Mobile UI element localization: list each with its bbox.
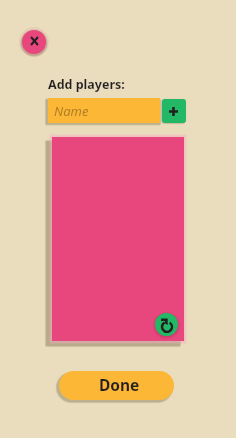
- button[interactable]: Add player: [162, 99, 186, 123]
- staticText: Add players:: [48, 76, 125, 93]
- staticText: Name: [54, 102, 89, 120]
- button[interactable]: Reset: [155, 313, 178, 336]
- staticText: Done: [99, 374, 140, 395]
- button[interactable]: Close: [22, 30, 46, 54]
- button[interactable]: Done: [59, 371, 174, 400]
- button[interactable]: Name: [48, 98, 160, 123]
